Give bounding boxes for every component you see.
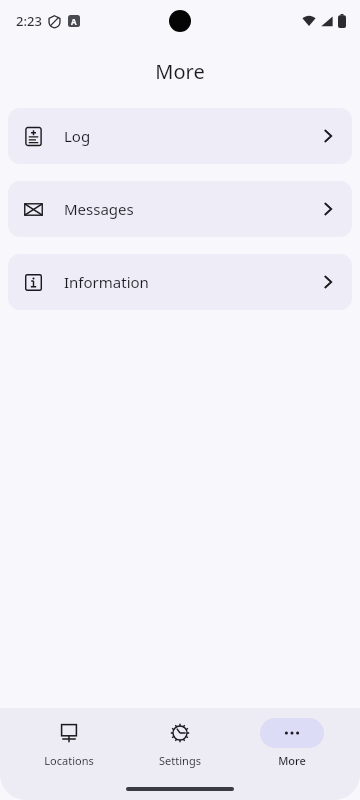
button[interactable]: Messages bbox=[8, 181, 352, 237]
staticText: Locations bbox=[44, 753, 94, 768]
staticText: Information bbox=[64, 272, 149, 292]
button[interactable]: More bbox=[249, 716, 335, 770]
staticText: A bbox=[71, 16, 77, 27]
staticText: Log bbox=[64, 126, 91, 146]
staticText: Messages bbox=[64, 199, 134, 219]
staticText: Settings bbox=[159, 753, 201, 768]
staticText: More bbox=[278, 753, 306, 768]
button[interactable]: Locations bbox=[26, 716, 112, 770]
other: Settings bbox=[170, 723, 190, 743]
button[interactable]: Log bbox=[8, 108, 352, 164]
button[interactable]: Information bbox=[8, 254, 352, 310]
button[interactable]: Settings bbox=[137, 716, 223, 770]
staticText: 2:23 bbox=[16, 12, 42, 30]
staticText: More bbox=[155, 58, 205, 85]
other: Locations bbox=[59, 723, 79, 743]
other: More bbox=[282, 723, 302, 743]
